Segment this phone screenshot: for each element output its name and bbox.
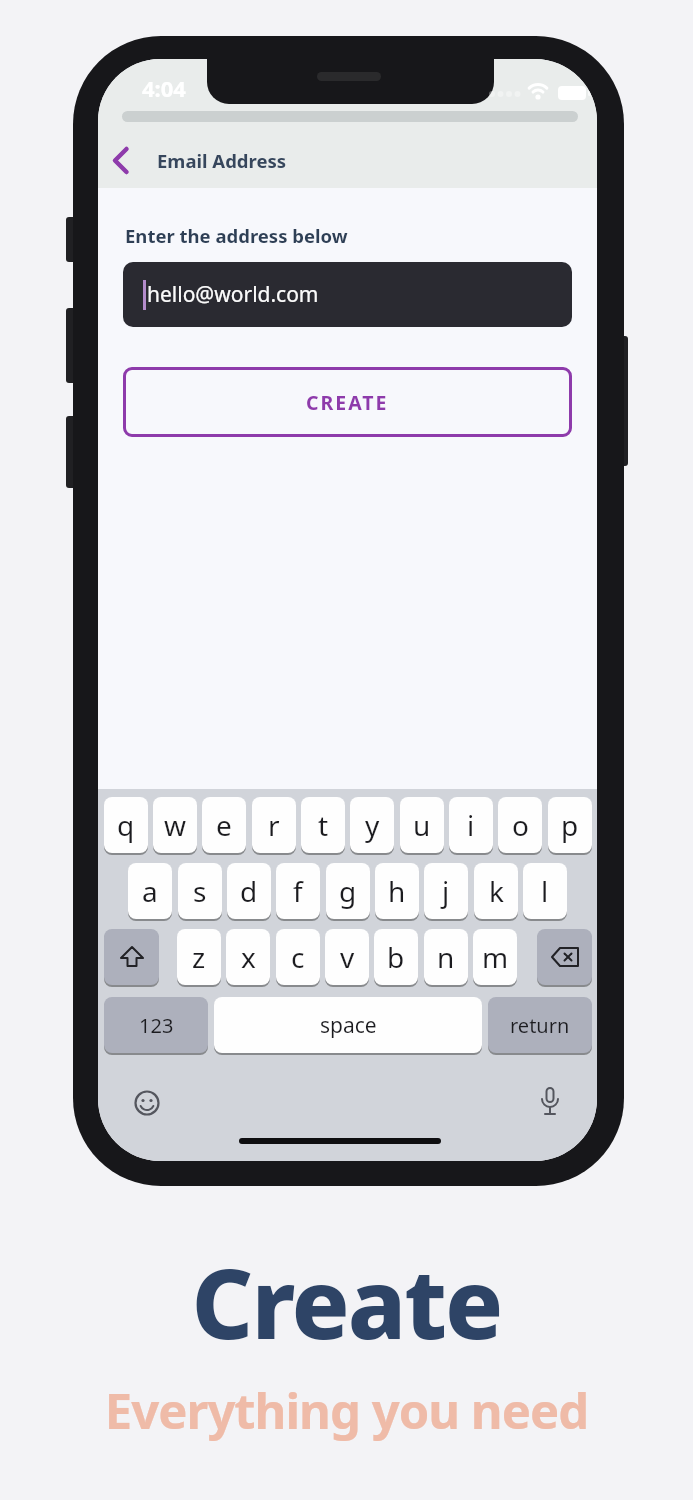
button[interactable]: i: [449, 797, 493, 853]
button[interactable]: u: [400, 797, 444, 853]
staticText: Enter the address below: [125, 223, 348, 248]
staticText: Everything you need: [0, 1377, 693, 1444]
staticText: l: [541, 872, 549, 910]
staticText: p: [561, 806, 579, 844]
button[interactable]: hello@world.com: [123, 262, 572, 327]
button[interactable]: f: [276, 863, 320, 919]
staticText: 123: [139, 1012, 174, 1039]
button[interactable]: [104, 929, 159, 985]
staticText: r: [268, 806, 280, 844]
staticText: g: [339, 872, 357, 910]
staticText: Create: [0, 1236, 693, 1367]
button[interactable]: [537, 929, 592, 985]
button[interactable]: q: [104, 797, 148, 853]
staticText: u: [413, 806, 431, 844]
button[interactable]: x: [226, 929, 270, 985]
button[interactable]: [104, 139, 144, 183]
staticText: o: [512, 806, 529, 844]
button[interactable]: z: [177, 929, 221, 985]
staticText: space: [320, 1011, 377, 1040]
staticText: j: [442, 872, 450, 910]
staticText: 4:04: [142, 73, 186, 103]
staticText: hello@world.com: [147, 280, 319, 309]
staticText: x: [241, 938, 256, 976]
staticText: f: [293, 872, 303, 910]
staticText: i: [467, 806, 475, 844]
staticText: k: [489, 872, 504, 910]
staticText: t: [318, 806, 329, 844]
button[interactable]: p: [548, 797, 592, 853]
button[interactable]: j: [424, 863, 468, 919]
staticText: v: [340, 938, 355, 976]
button[interactable]: l: [523, 863, 567, 919]
staticText: z: [192, 938, 206, 976]
staticText: a: [142, 872, 158, 910]
button[interactable]: n: [424, 929, 468, 985]
button[interactable]: k: [474, 863, 518, 919]
button[interactable]: h: [375, 863, 419, 919]
button[interactable]: s: [178, 863, 222, 919]
button[interactable]: return: [488, 997, 592, 1053]
button[interactable]: space: [214, 997, 482, 1053]
staticText: Email Address: [157, 148, 287, 173]
staticText: s: [193, 872, 207, 910]
button[interactable]: b: [374, 929, 418, 985]
staticText: h: [388, 872, 406, 910]
staticText: c: [291, 938, 305, 976]
button[interactable]: v: [325, 929, 369, 985]
staticText: e: [216, 806, 232, 844]
staticText: b: [387, 938, 405, 976]
staticText: CREATE: [306, 389, 389, 416]
button[interactable]: a: [128, 863, 172, 919]
button[interactable]: w: [153, 797, 197, 853]
staticText: w: [164, 806, 187, 844]
staticText: y: [365, 806, 380, 844]
button[interactable]: o: [498, 797, 542, 853]
staticText: m: [482, 938, 509, 976]
button[interactable]: c: [276, 929, 320, 985]
button[interactable]: y: [350, 797, 394, 853]
staticText: return: [510, 1012, 570, 1039]
button[interactable]: e: [202, 797, 246, 853]
button[interactable]: r: [252, 797, 296, 853]
button[interactable]: t: [301, 797, 345, 853]
button[interactable]: d: [227, 863, 271, 919]
staticText: d: [240, 872, 258, 910]
button[interactable]: g: [326, 863, 370, 919]
staticText: q: [117, 806, 135, 844]
button[interactable]: m: [473, 929, 517, 985]
button[interactable]: CREATE: [123, 367, 572, 437]
staticText: n: [437, 938, 455, 976]
button[interactable]: 123: [104, 997, 208, 1053]
